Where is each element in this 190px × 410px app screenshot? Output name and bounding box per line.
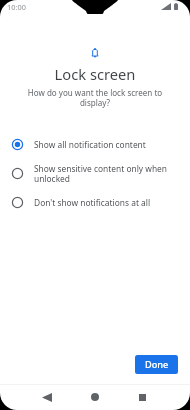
button[interactable]: Back (35, 385, 59, 409)
button[interactable]: Done (135, 355, 178, 374)
staticText: Lock screen (0, 64, 190, 84)
button[interactable]: Home (83, 385, 107, 409)
staticText: 10:00 (7, 2, 26, 12)
staticText: Show sensitive content only when unlocke… (34, 163, 182, 185)
staticText: Don't show notifications at all (34, 197, 151, 208)
staticText: Done (145, 358, 169, 371)
button[interactable]: Show all notification content (0, 130, 190, 159)
staticText: How do you want the lock screen to displ… (14, 87, 176, 108)
button[interactable]: Don't show notifications at all (0, 188, 190, 217)
button[interactable]: Show sensitive content only when unlocke… (0, 159, 190, 188)
button[interactable]: Recent apps (130, 385, 154, 409)
staticText: Show all notification content (34, 139, 146, 150)
